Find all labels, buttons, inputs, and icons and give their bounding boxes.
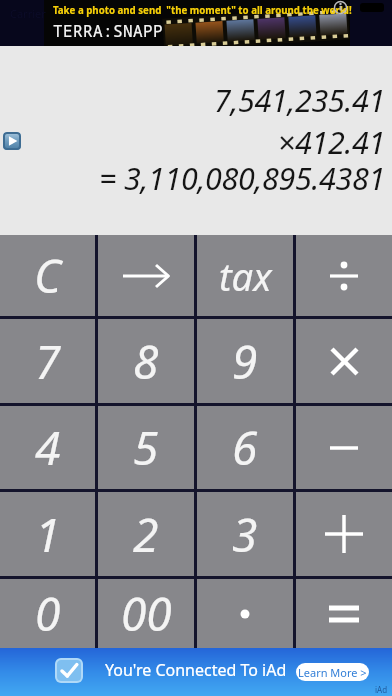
staticText: tax bbox=[219, 250, 272, 302]
staticText: ×412.41 bbox=[277, 121, 385, 163]
button[interactable]: tax bbox=[197, 235, 293, 316]
staticText: iAd bbox=[375, 684, 388, 695]
button[interactable]: 8 bbox=[98, 319, 194, 403]
staticText: = 3,110,080,895.4381 bbox=[99, 157, 385, 199]
staticText: 4 bbox=[35, 416, 61, 479]
button[interactable]: 9 bbox=[197, 319, 293, 403]
button[interactable] bbox=[296, 579, 392, 648]
button[interactable]: 4 bbox=[0, 406, 95, 489]
button[interactable]: 00 bbox=[98, 579, 194, 648]
staticText: 3 bbox=[232, 503, 258, 566]
button[interactable] bbox=[98, 235, 194, 316]
staticText: 5 bbox=[133, 416, 159, 479]
button[interactable] bbox=[296, 406, 392, 489]
staticText: TERRA:SNAPP bbox=[53, 20, 164, 42]
button[interactable] bbox=[296, 492, 392, 576]
button[interactable]: 3 bbox=[197, 492, 293, 576]
button[interactable]: 0 bbox=[0, 579, 95, 648]
staticText: 0 bbox=[35, 582, 61, 645]
button[interactable]: Learn More > bbox=[296, 663, 369, 681]
button[interactable] bbox=[296, 319, 392, 403]
staticText: 00 bbox=[121, 582, 172, 645]
button[interactable]: 2 bbox=[98, 492, 194, 576]
button[interactable]: 7 bbox=[0, 319, 95, 403]
staticText: C bbox=[34, 244, 62, 307]
staticText: 6 bbox=[232, 416, 258, 479]
button[interactable]: You're Connected To iAd bbox=[0, 648, 392, 696]
button[interactable]: C bbox=[0, 235, 95, 316]
staticText: 8 bbox=[133, 330, 159, 393]
staticText: 7 bbox=[35, 330, 61, 393]
button[interactable] bbox=[296, 235, 392, 316]
staticText: Learn More > bbox=[298, 665, 367, 680]
button[interactable]: 6 bbox=[197, 406, 293, 489]
staticText: 1 bbox=[35, 503, 61, 566]
staticText: 2 bbox=[133, 503, 159, 566]
button[interactable]: 1 bbox=[0, 492, 95, 576]
staticText: Take a photo and send "the moment" to al… bbox=[53, 4, 352, 17]
staticText: 9 bbox=[232, 330, 258, 393]
button[interactable] bbox=[197, 579, 293, 648]
staticText: Carrier bbox=[10, 6, 46, 21]
staticText: 7,541,235.41 bbox=[213, 79, 385, 121]
staticText: You're Connected To iAd bbox=[105, 659, 287, 681]
button[interactable]: 5 bbox=[98, 406, 194, 489]
button[interactable] bbox=[3, 132, 21, 150]
